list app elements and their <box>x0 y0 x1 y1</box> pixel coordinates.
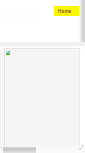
button[interactable]: Scroll horizontally <box>3 147 36 153</box>
button[interactable]: Scroll vertically <box>79 0 85 43</box>
staticText: Home <box>58 8 72 14</box>
other: Resize <box>78 143 85 150</box>
other: Image placeholder <box>6 51 11 56</box>
button[interactable]: Home <box>54 6 80 16</box>
